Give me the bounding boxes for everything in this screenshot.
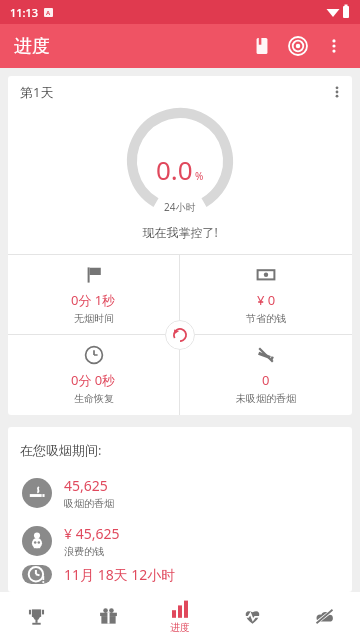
button[interactable]: ¥ 45,625 [8, 517, 352, 565]
staticText: 45,625 [64, 476, 108, 495]
staticText: A [46, 9, 51, 17]
button[interactable]: 0分 0秒 [8, 335, 179, 415]
button[interactable]: Awards [0, 592, 72, 640]
staticText: 0 [262, 371, 270, 389]
button[interactable]: Reset [165, 320, 195, 350]
button[interactable]: More options [316, 28, 352, 64]
staticText: 在您吸烟期间: [20, 441, 102, 459]
staticText: ¥ 45,625 [64, 524, 120, 543]
staticText: 11:13 [10, 5, 39, 20]
button[interactable]: ¥ 0 [180, 255, 352, 334]
staticText: ¥ 0 [257, 291, 276, 309]
button[interactable]: No smoking [288, 592, 360, 640]
button[interactable]: Health [216, 592, 288, 640]
staticText: 现在我掌控了! [8, 224, 352, 240]
staticText: 0分 1秒 [71, 291, 116, 309]
staticText: 无烟时间 [74, 312, 114, 325]
staticText: 节省的钱 [246, 312, 286, 325]
staticText: 浪费的钱 [64, 545, 104, 558]
staticText: 0.0 [156, 152, 193, 187]
staticText: 进度 [14, 35, 50, 58]
staticText: 0分 0秒 [71, 371, 116, 389]
staticText: 未吸烟的香烟 [236, 392, 296, 405]
button[interactable]: 11月 18天 12小时 [8, 565, 352, 584]
staticText: 第1天 [20, 83, 54, 101]
button[interactable]: 0 [180, 335, 352, 415]
staticText: 11月 18天 12小时 [64, 565, 176, 584]
button[interactable]: 0分 1秒 [8, 255, 179, 334]
button[interactable]: 进度 [144, 592, 216, 640]
staticText: 24小时 [164, 200, 196, 214]
button[interactable]: Target [280, 28, 316, 64]
button[interactable]: Card options [322, 77, 352, 107]
staticText: 进度 [170, 621, 190, 634]
staticText: 生命恢复 [74, 392, 114, 405]
button[interactable]: 45,625 [8, 469, 352, 517]
button[interactable]: Book [244, 28, 280, 64]
staticText: % [195, 169, 204, 183]
staticText: 吸烟的香烟 [64, 497, 114, 510]
button[interactable]: Gifts [72, 592, 144, 640]
